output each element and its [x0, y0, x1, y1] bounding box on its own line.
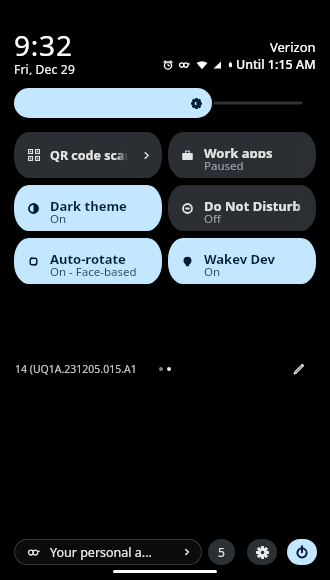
button[interactable]: Wakey Dev [168, 238, 316, 284]
button[interactable]: Dark theme [14, 185, 162, 231]
button[interactable]: 5 [208, 539, 235, 565]
button[interactable]: Edit tiles [290, 360, 308, 378]
button[interactable]: Brightness [14, 88, 212, 118]
staticText: Work apps [204, 144, 273, 158]
button[interactable]: Power [287, 539, 317, 565]
staticText: Wakey Dev [204, 250, 275, 264]
staticText: Dark theme [50, 197, 127, 211]
staticText: Until 1:15 AM [236, 56, 316, 73]
button[interactable]: Work apps [168, 132, 316, 178]
button[interactable]: Settings [247, 539, 277, 565]
staticText: On [50, 211, 67, 224]
staticText: 14 (UQ1A.231205.015.A1 [15, 362, 137, 376]
staticText: Paused [204, 158, 244, 171]
button[interactable]: Do Not Disturb [168, 185, 316, 231]
staticText: Fri, Dec 29 [14, 61, 75, 75]
staticText: 9:32 [14, 26, 73, 64]
staticText: Your personal a... [50, 544, 183, 561]
staticText: Off [204, 211, 221, 224]
button[interactable]: QR code scanner [14, 132, 162, 178]
staticText: Do Not Disturb [204, 197, 301, 211]
button[interactable]: Auto-rotate [14, 238, 162, 284]
staticText: On [204, 264, 221, 277]
staticText: On - Face-based [50, 264, 137, 277]
staticText: 5 [218, 544, 225, 560]
button[interactable]: Your personal a... [14, 539, 202, 565]
staticText: Verizon [270, 38, 316, 56]
staticText: Auto-rotate [50, 250, 126, 264]
staticText: QR code scanner [50, 147, 128, 163]
